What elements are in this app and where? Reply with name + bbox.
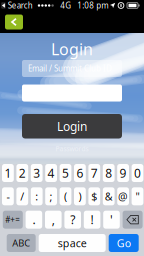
button[interactable]: 4	[45, 164, 57, 182]
button[interactable]: .	[26, 211, 42, 229]
staticText: Email / Summit Club ID	[28, 63, 112, 74]
staticText: 8	[105, 165, 112, 181]
staticText: 0	[134, 165, 141, 181]
staticText: !	[91, 212, 94, 228]
button[interactable]: (	[60, 187, 71, 205]
button[interactable]: 8	[103, 164, 115, 182]
button[interactable]: Email / Summit Club ID	[22, 60, 122, 77]
button[interactable]: space	[39, 234, 106, 252]
button[interactable]: Back	[5, 14, 23, 29]
button[interactable]: Login	[22, 114, 122, 138]
button[interactable]: 2	[16, 164, 28, 182]
staticText: 3	[33, 165, 40, 181]
staticText: :	[35, 189, 38, 203]
staticText: ;	[50, 189, 53, 203]
staticText: Login	[57, 118, 87, 134]
staticText: '	[110, 212, 113, 228]
button[interactable]: ,	[45, 211, 62, 229]
staticText: @	[118, 189, 128, 203]
button[interactable]: ;	[45, 187, 57, 205]
staticText: 5	[62, 165, 69, 181]
button[interactable]: '	[103, 211, 120, 229]
staticText: $	[91, 189, 97, 203]
staticText: Passwords	[55, 144, 88, 153]
staticText: (	[64, 189, 67, 203]
button[interactable]: 5	[60, 164, 71, 182]
button[interactable]: )	[74, 187, 86, 205]
button[interactable]: 6	[74, 164, 86, 182]
staticText: 4	[48, 165, 55, 181]
staticText: 7	[91, 165, 98, 181]
button[interactable]: ?	[64, 211, 81, 229]
button[interactable]: 1	[2, 164, 14, 182]
staticText: /	[20, 189, 24, 203]
button[interactable]: ABC	[7, 234, 36, 252]
staticText: 9	[120, 165, 127, 181]
button[interactable]: !	[84, 211, 100, 229]
staticText: 1:08 pm	[77, 0, 108, 11]
staticText: 6	[76, 165, 83, 181]
staticText: Search	[6, 0, 33, 11]
button[interactable]: Go	[109, 234, 139, 252]
staticText: ABC	[12, 237, 30, 249]
staticText: Go	[117, 236, 131, 250]
staticText: 1	[4, 165, 11, 181]
staticText: .	[32, 212, 35, 228]
staticText: ?	[70, 212, 75, 228]
staticText: space	[58, 236, 87, 250]
staticText: )	[78, 189, 81, 203]
staticText: Login	[51, 38, 93, 60]
staticText: ,	[52, 212, 55, 228]
button[interactable]: :	[31, 187, 43, 205]
staticText: -	[6, 189, 9, 203]
button[interactable]: Password	[22, 84, 122, 101]
button[interactable]: 7	[88, 164, 100, 182]
staticText: 4G	[60, 0, 71, 11]
button[interactable]: 3	[31, 164, 43, 182]
staticText: "	[135, 189, 139, 203]
button[interactable]: &	[103, 187, 115, 205]
staticText: 2	[19, 165, 26, 181]
button[interactable]: $	[88, 187, 100, 205]
button[interactable]: /	[16, 187, 28, 205]
button[interactable]: 9	[117, 164, 129, 182]
button[interactable]: 0	[132, 164, 143, 182]
button[interactable]: "	[132, 187, 143, 205]
button[interactable]: #+=	[3, 211, 23, 229]
button[interactable]: -	[2, 187, 14, 205]
staticText: &	[105, 189, 113, 203]
staticText: #+=	[5, 214, 20, 225]
button[interactable]: @	[117, 187, 129, 205]
button[interactable]: Delete	[123, 211, 143, 229]
